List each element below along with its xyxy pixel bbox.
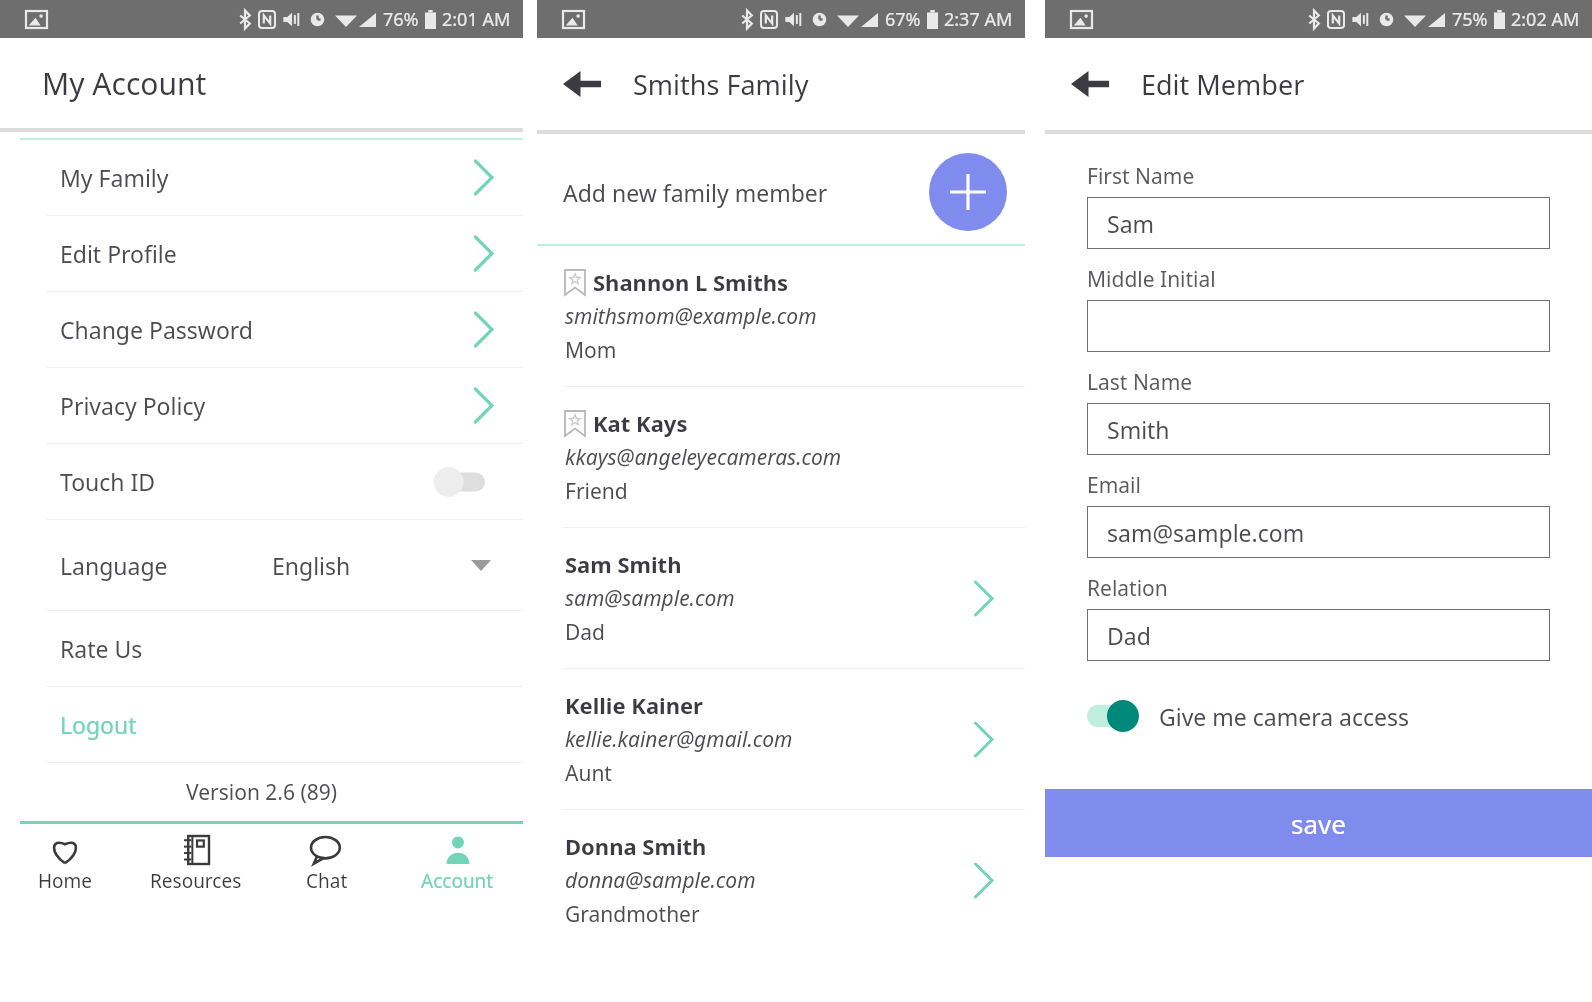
staticText: Account [421,868,494,894]
staticText: Smiths Family [633,66,809,103]
staticText: 67% [885,7,921,32]
staticText: Email [1087,471,1141,500]
staticText: Kat Kays [593,408,688,438]
button[interactable] [1087,300,1550,352]
staticText: Touch ID [60,466,156,497]
staticText: smithsmom@example.com [565,302,817,331]
button[interactable]: Sam Smith [537,528,1025,668]
staticText: kellie.kainer@gmail.com [565,725,793,754]
button[interactable]: Edit Profile [0,216,523,291]
staticText: Relation [1087,574,1168,603]
staticText: 76% [383,7,419,32]
staticText: kkays@angeleyecameras.com [565,443,842,472]
button[interactable]: Shannon L Smiths [537,246,1025,386]
staticText: 75% [1452,7,1488,32]
button[interactable]: Rate Us [0,611,523,686]
button[interactable]: Resources [130,824,261,906]
staticText: My Account [42,63,207,104]
staticText: save [1291,806,1346,841]
staticText: Kellie Kainer [565,690,703,720]
staticText: Chat [306,868,348,894]
staticText: First Name [1087,162,1195,191]
staticText: Edit Member [1141,66,1305,103]
button[interactable]: Kellie Kainer [537,669,1025,809]
staticText: Smith [1107,414,1170,445]
button[interactable]: Change Password [0,292,523,367]
button[interactable]: Back [1063,57,1117,111]
staticText: My Family [60,162,169,193]
button[interactable]: Logout [0,687,523,762]
staticText: Last Name [1087,368,1193,397]
staticText: 2:02 AM [1511,7,1580,32]
staticText: Give me camera access [1159,701,1410,732]
staticText: Friend [565,477,628,506]
button[interactable]: Donna Smith [537,810,1025,950]
button[interactable]: save [1045,789,1592,857]
staticText: Sam Smith [565,549,682,579]
staticText: Add new family member [563,177,828,208]
staticText: English [272,550,351,581]
staticText: Mom [565,336,617,365]
button[interactable]: Smith [1087,403,1550,455]
staticText: Resources [150,868,242,894]
staticText: Donna Smith [565,831,707,861]
button[interactable]: Dad [1087,609,1550,661]
staticText: Logout [60,709,137,740]
button[interactable]: Add new family member [537,140,1025,244]
staticText: sam@sample.com [565,584,735,613]
button[interactable]: Home [0,824,130,906]
button[interactable]: Chat [261,824,392,906]
staticText: Edit Profile [60,238,177,269]
button[interactable]: My Family [0,140,523,215]
staticText: Sam [1107,208,1155,239]
staticText: 2:01 AM [442,7,511,32]
staticText: Dad [1107,620,1151,651]
button[interactable]: Add family member [929,153,1007,231]
staticText: Aunt [565,759,612,788]
staticText: Change Password [60,314,253,345]
button[interactable]: Privacy Policy [0,368,523,443]
staticText: Home [38,868,93,894]
staticText: Privacy Policy [60,390,206,421]
button[interactable]: Touch ID [0,444,523,519]
staticText: Language [60,550,168,581]
staticText: Dad [565,618,606,647]
staticText: 2:37 AM [944,7,1013,32]
staticText: Middle Initial [1087,265,1216,294]
button[interactable]: Kat Kays [537,387,1025,527]
staticText: sam@sample.com [1107,517,1305,548]
button[interactable]: sam@sample.com [1087,506,1550,558]
button[interactable]: Account [392,824,523,906]
staticText: donna@sample.com [565,866,756,895]
button[interactable]: Sam [1087,197,1550,249]
staticText: Shannon L Smiths [593,267,789,297]
button[interactable]: Give me camera access [1087,689,1592,743]
button[interactable]: Back [555,57,609,111]
staticText: Version 2.6 (89) [186,778,338,807]
staticText: Rate Us [60,633,143,664]
button[interactable]: Language [0,520,523,610]
staticText: Grandmother [565,900,700,929]
